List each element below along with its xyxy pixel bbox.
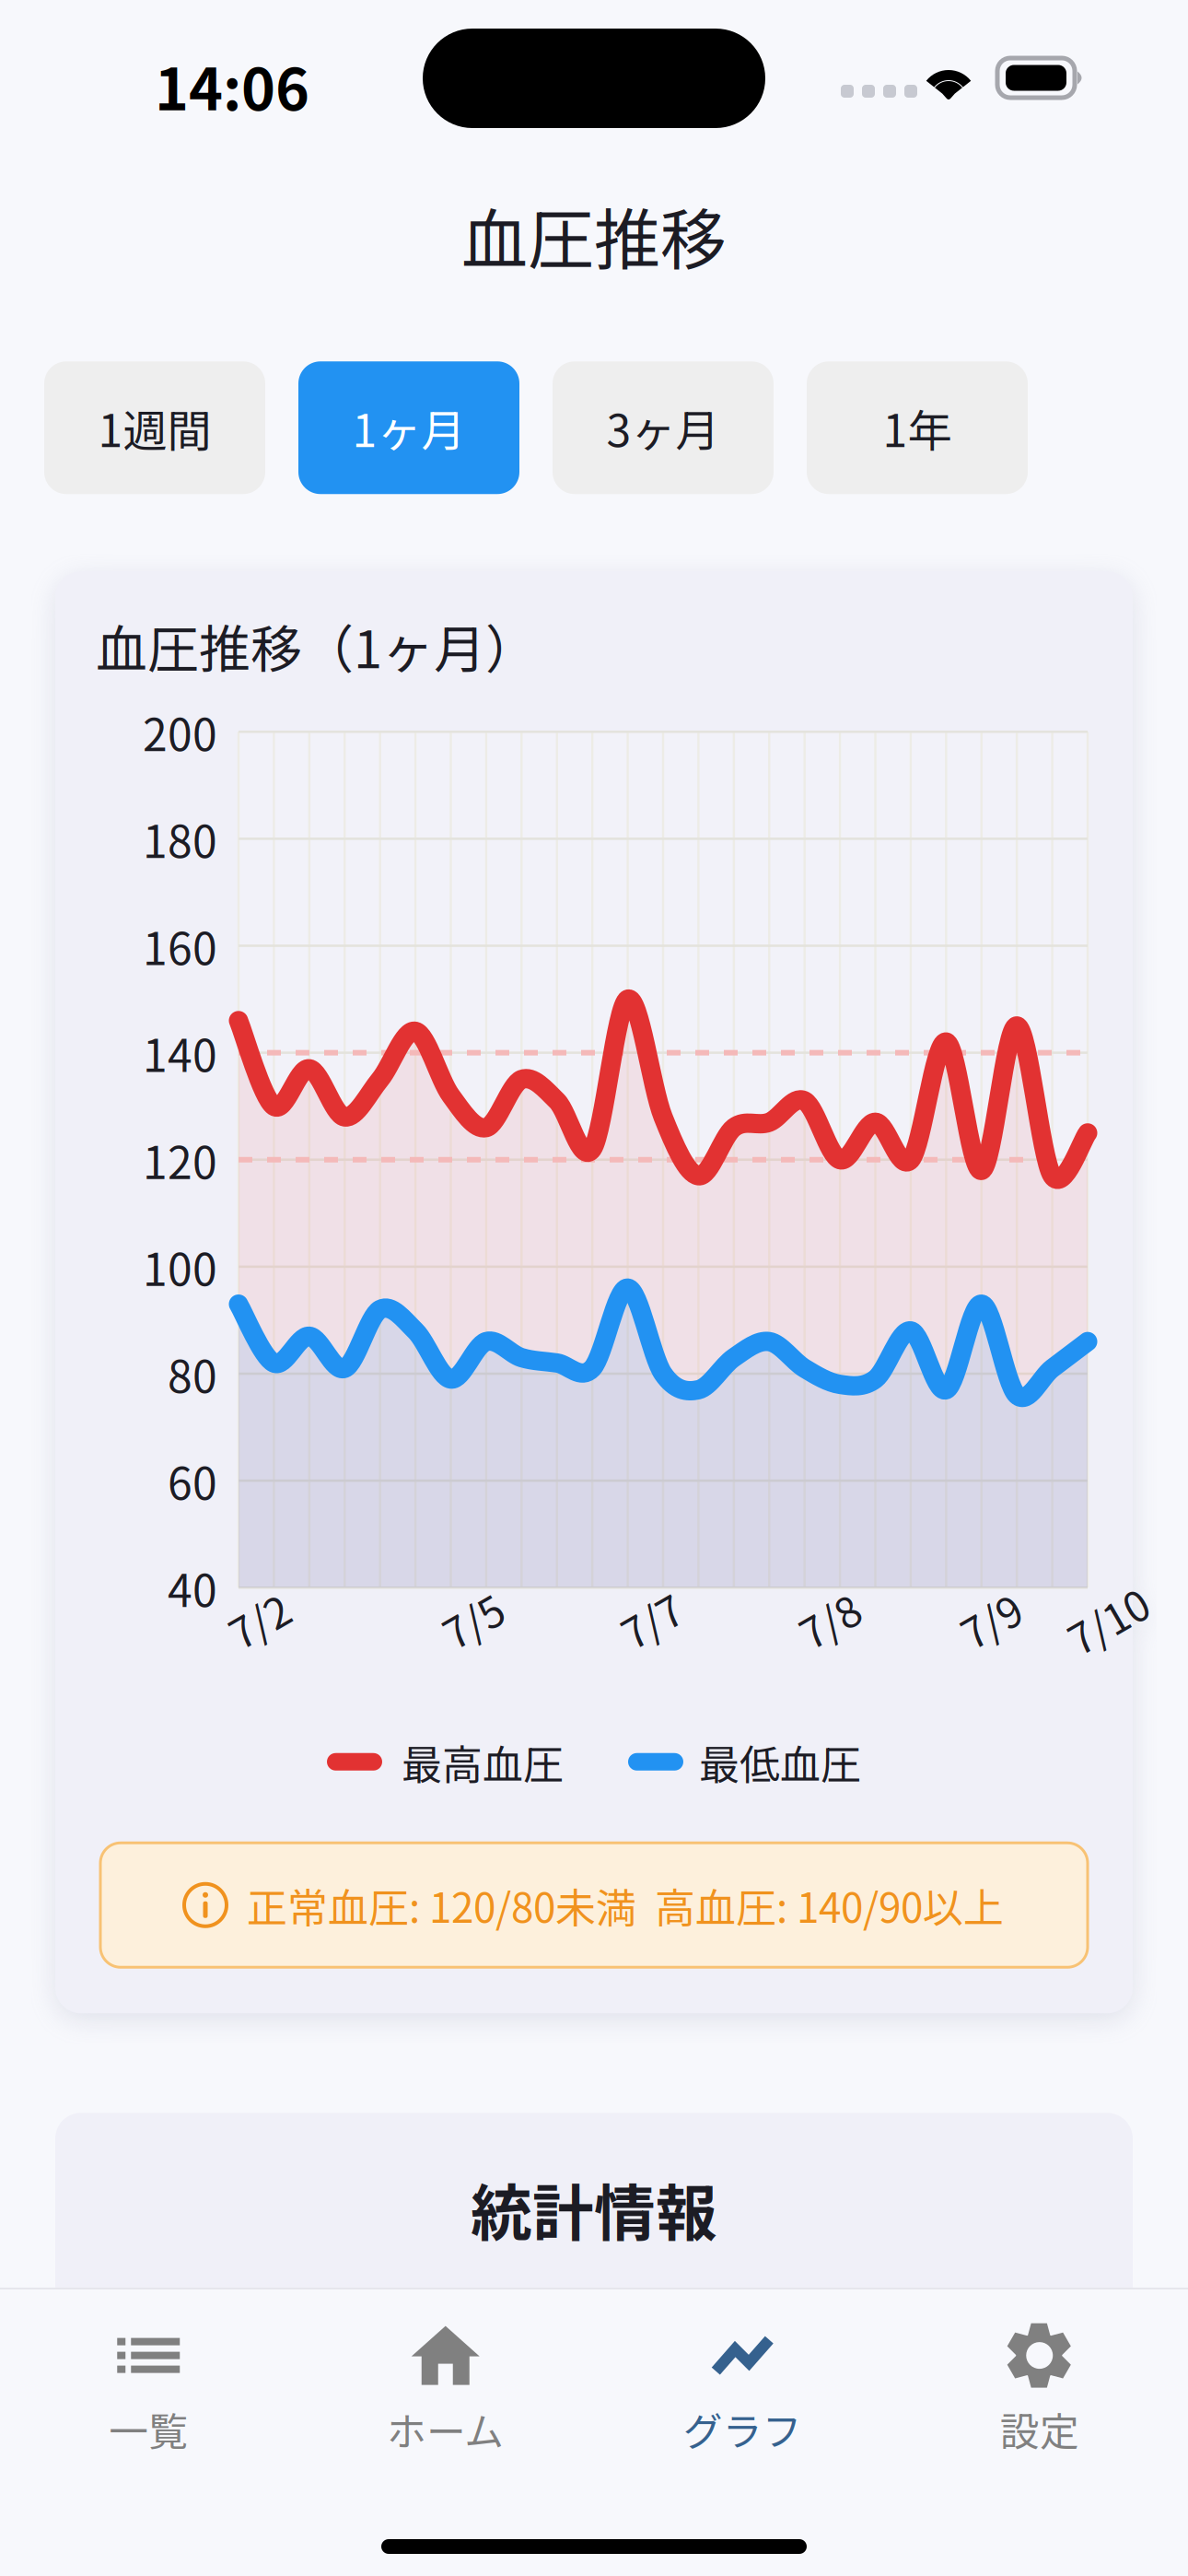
staticText: 最高血圧 [402, 1732, 564, 1791]
button[interactable]: 1ヶ月 [298, 361, 519, 494]
staticText: 60 [168, 1449, 217, 1513]
staticText: グラフ [683, 2401, 802, 2458]
staticText: 一覧 [109, 2401, 188, 2458]
staticText: 正常血圧: 120/80未満 高血圧: 140/90以上 [247, 1876, 1004, 1934]
staticText: 最低血圧 [699, 1732, 861, 1791]
staticText: 140 [143, 1021, 217, 1085]
staticText: 7/7 [620, 1590, 682, 1650]
staticText: 100 [143, 1235, 217, 1299]
staticText: 80 [168, 1342, 217, 1406]
button[interactable]: 設定 [891, 2297, 1188, 2478]
staticText: 160 [143, 914, 217, 978]
staticText: 7/8 [798, 1590, 861, 1650]
staticText: 7/10 [1065, 1590, 1151, 1650]
staticText: 1年 [883, 396, 952, 460]
button[interactable]: 1年 [807, 361, 1028, 494]
staticText: 7/2 [227, 1590, 290, 1650]
staticText: 1ヶ月 [352, 396, 466, 460]
staticText: 血圧推移（1ヶ月） [96, 608, 537, 683]
button[interactable]: グラフ [594, 2297, 891, 2478]
button[interactable]: 一覧 [0, 2297, 297, 2478]
staticText: ホーム [387, 2401, 504, 2458]
staticText: 120 [143, 1128, 217, 1192]
staticText: 14:06 [155, 43, 309, 127]
staticText: 統計情報 [471, 2164, 717, 2253]
button[interactable]: ホーム [297, 2297, 594, 2478]
staticText: 40 [168, 1556, 217, 1620]
staticText: 1週間 [98, 396, 211, 460]
staticText: 200 [143, 700, 217, 764]
staticText: 設定 [1000, 2401, 1079, 2458]
staticText: 180 [143, 807, 217, 871]
staticText: 7/5 [441, 1590, 504, 1650]
staticText: 血圧推移 [461, 187, 727, 283]
staticText: 3ヶ月 [606, 396, 720, 460]
staticText: 7/9 [959, 1590, 1022, 1650]
button[interactable]: 1週間 [44, 361, 265, 494]
button[interactable]: 3ヶ月 [553, 361, 774, 494]
